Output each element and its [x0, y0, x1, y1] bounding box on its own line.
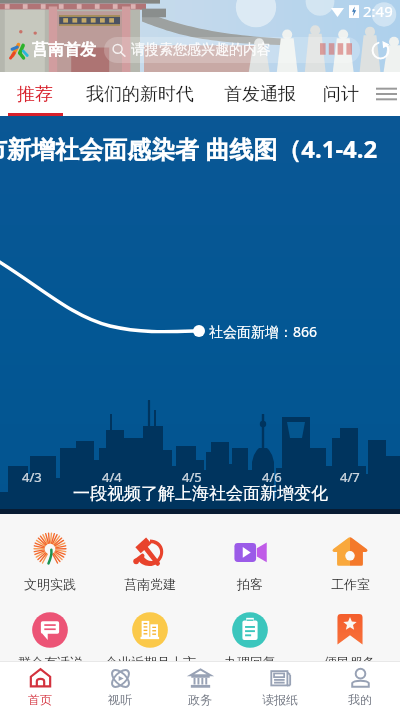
button[interactable]: 便民服务 — [300, 611, 400, 661]
staticText: 4/6 — [262, 468, 282, 486]
button[interactable]: Refresh — [368, 38, 392, 62]
staticText: 读报纸 — [262, 692, 298, 707]
staticText: 企业近期且上市 — [105, 654, 196, 661]
staticText: 市新增社会面感染者 曲线图（4.1-4.2 — [0, 132, 378, 165]
button[interactable]: 办理回复 — [200, 611, 300, 661]
staticText: 便民服务 — [324, 654, 376, 661]
staticText: 4/5 — [182, 468, 202, 486]
staticText: 首页 — [28, 692, 52, 707]
button[interactable]: 视听 — [80, 662, 160, 711]
staticText: 工作室 — [331, 576, 370, 592]
button[interactable]: 问计 — [310, 72, 372, 116]
button[interactable]: 市新增社会面感染者 曲线图（4.1-4.2 — [0, 116, 400, 514]
staticText: 莒南党建 — [124, 576, 176, 592]
button[interactable]: 工作室 — [300, 533, 400, 592]
button[interactable]: 首发通报 — [210, 72, 310, 116]
staticText: 首发通报 — [224, 83, 296, 106]
button[interactable]: 群众有话说 — [0, 611, 100, 661]
staticText: 莒南首发 — [32, 40, 96, 60]
button[interactable]: 拍客 — [200, 533, 300, 592]
staticText: 视听 — [108, 692, 132, 707]
button[interactable]: 首页 — [0, 662, 80, 711]
staticText: 我们的新时代 — [86, 83, 194, 106]
button[interactable]: 文明实践 — [0, 533, 100, 592]
button[interactable]: 企业近期且上市 — [100, 611, 200, 661]
button[interactable]: 政务 — [160, 662, 240, 711]
button[interactable]: 莒南党建 — [100, 533, 200, 592]
staticText: 群众有话说 — [18, 654, 83, 661]
staticText: 办理回复 — [224, 654, 276, 661]
staticText: 社会面新增：866 — [209, 322, 318, 341]
staticText: 4/7 — [340, 468, 360, 486]
staticText: 4/4 — [102, 468, 122, 486]
staticText: 推荐 — [17, 83, 53, 106]
button[interactable]: 推荐 — [0, 72, 70, 116]
button[interactable]: More channels — [372, 72, 400, 116]
button[interactable]: 请搜索您感兴趣的内容 — [104, 37, 360, 63]
staticText: 2:49 — [363, 1, 393, 21]
staticText: 我的 — [348, 692, 372, 707]
staticText: 拍客 — [237, 576, 263, 592]
staticText: 请搜索您感兴趣的内容 — [131, 41, 271, 59]
staticText: 政务 — [188, 692, 212, 707]
button[interactable]: 我的 — [320, 662, 400, 711]
staticText: 问计 — [323, 83, 359, 106]
button[interactable]: 我们的新时代 — [70, 72, 210, 116]
button[interactable]: 读报纸 — [240, 662, 320, 711]
staticText: 文明实践 — [24, 576, 76, 592]
staticText: 一段视频了解上海社会面新增变化 — [73, 483, 328, 504]
staticText: 4/3 — [22, 468, 42, 486]
